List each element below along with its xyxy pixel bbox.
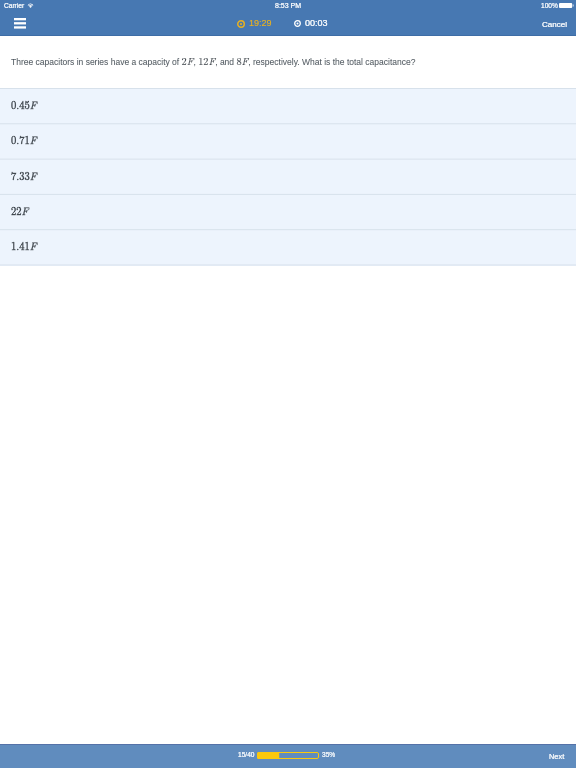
staticText: 15/40 — [238, 751, 255, 758]
staticText: 1.41F — [11, 238, 37, 253]
staticText: Three capacitors in series have a capaci… — [11, 53, 416, 68]
staticText: 1.41F — [11, 238, 37, 253]
button[interactable]: 7.33F — [0, 159, 576, 194]
staticText: 0.71F — [11, 132, 37, 147]
other: Time remaining — [237, 20, 245, 28]
staticText: Cancel — [542, 20, 567, 29]
staticText: Three capacitors in series have a capaci… — [11, 53, 416, 68]
staticText: 0.45F — [11, 97, 37, 112]
staticText: 8:53 PM — [275, 2, 302, 10]
button[interactable]: 1.41F — [0, 229, 576, 264]
staticText: 19:29 — [249, 18, 272, 28]
staticText: 00:03 — [305, 18, 328, 28]
staticText: Carrier — [4, 2, 25, 9]
button[interactable]: Open navigation menu — [9, 12, 31, 36]
button[interactable]: Cancel — [536, 12, 572, 36]
button[interactable]: 0.45F — [0, 88, 576, 123]
other: Time elapsed — [294, 20, 301, 27]
staticText: 35% — [322, 751, 336, 758]
staticText: Next — [549, 752, 565, 760]
staticText: 7.33F — [11, 168, 37, 183]
other: Quiz progress 35 percent — [257, 752, 319, 759]
staticText: 7.33F — [11, 168, 37, 183]
button[interactable]: 0.71F — [0, 123, 576, 158]
button[interactable]: Next — [541, 744, 573, 768]
staticText: 22F — [11, 203, 29, 218]
staticText: 0.71F — [11, 132, 37, 147]
staticText: 22F — [11, 203, 29, 218]
staticText: 0.45F — [11, 97, 37, 112]
button[interactable]: 22F — [0, 194, 576, 229]
staticText: 100% — [541, 2, 558, 9]
